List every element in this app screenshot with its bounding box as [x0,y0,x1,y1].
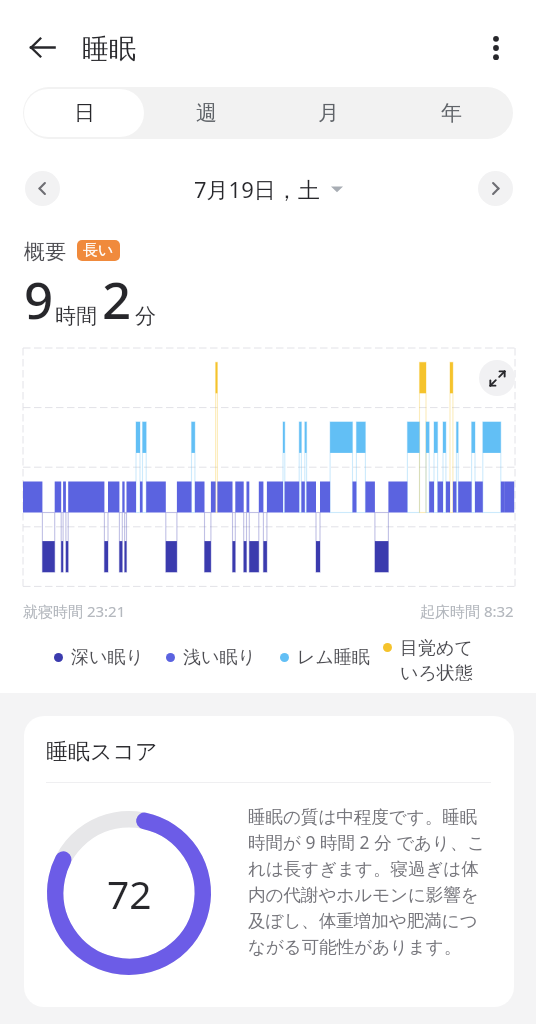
button[interactable]: Next day [478,171,513,206]
button[interactable]: 7月19日，土 [194,174,343,204]
staticText: 目覚めて いろ状態 [400,637,473,685]
button[interactable]: 週 [146,89,266,137]
staticText: 睡眠の質は中程度です。睡眠 時間が 9 時間 2 分 であり、こ れは長すぎます… [248,806,488,959]
staticText: 浅い眠り [183,646,256,669]
button[interactable]: 深い眠り [54,646,144,669]
staticText: 深い眠り [71,646,144,669]
staticText: レム睡眠 [297,646,370,669]
staticText: 72 [107,867,152,920]
staticText: 日 [74,100,95,126]
button[interactable]: Expand chart [479,360,515,396]
button[interactable]: 浅い眠り [166,646,256,669]
staticText: 睡眠 [82,32,136,66]
staticText: 睡眠スコア [46,738,158,766]
staticText: 週 [196,100,217,126]
staticText: 2 [102,264,132,333]
staticText: 概要 [24,239,66,265]
button[interactable]: 年 [391,89,512,137]
staticText: 時間 [55,303,97,329]
button[interactable]: 日 [24,89,144,137]
staticText: 就寝時間 23:21 [23,601,126,621]
button[interactable]: 目覚めて いろ状態 [383,637,473,685]
staticText: 分 [135,303,156,329]
staticText: 9 [24,264,54,333]
staticText: 起床時間 8:32 [420,601,514,621]
staticText: 年 [441,100,462,126]
button[interactable]: Previous day [25,171,60,206]
button[interactable]: 月 [268,89,389,137]
staticText: 7月19日，土 [194,174,320,204]
staticText: 長い [83,241,114,260]
staticText: 月 [318,100,339,126]
button[interactable]: レム睡眠 [280,646,370,669]
button[interactable]: Back [19,24,65,70]
button[interactable]: More options [474,26,518,70]
